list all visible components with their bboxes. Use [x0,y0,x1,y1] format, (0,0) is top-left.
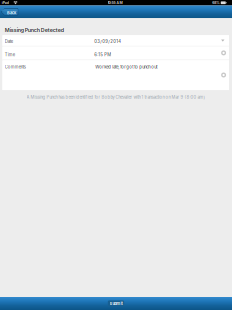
staticText: 6:15 PM [94,52,111,57]
staticText: 03/09/2014 [94,39,121,44]
staticText: Worked late, forgot to punch out [95,64,157,70]
staticText: Submit [109,301,122,306]
staticText: 68% [212,1,219,5]
staticText: A Missing Punch has been identified for … [26,95,205,100]
button[interactable]: Back [1,8,18,15]
staticText: Missing Punch Detected [5,27,64,33]
staticText: Time [5,52,15,57]
button[interactable]: Date [2,35,229,46]
staticText: Comments [5,64,26,70]
button[interactable]: Comments [2,60,229,90]
staticText: iPad [2,1,9,5]
staticText: Back [7,10,16,15]
button[interactable]: Submit [108,300,124,307]
staticText: Date [5,39,13,44]
staticText: 10:55 AM [107,1,122,5]
button[interactable]: Time [2,46,229,60]
